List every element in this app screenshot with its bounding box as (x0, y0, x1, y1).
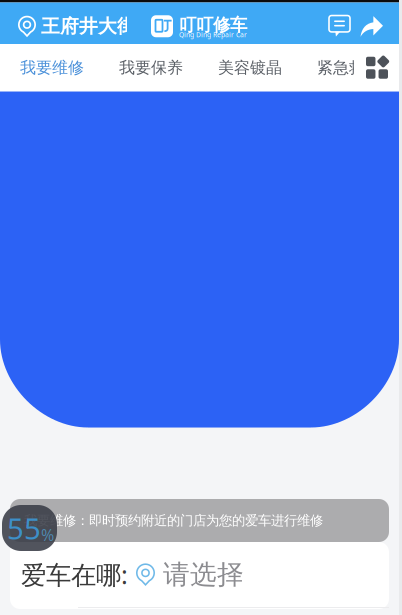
button[interactable]: 美容镀晶 (218, 44, 281, 91)
staticText: 爱车在哪: (21, 558, 128, 591)
button[interactable]: Share (360, 15, 383, 38)
button[interactable]: 爱车在哪: (10, 542, 389, 607)
button[interactable]: Messages (329, 15, 350, 37)
button[interactable]: 王府井大街 (0, 2, 147, 44)
button[interactable]: 我要维修 (20, 44, 83, 91)
staticText: 55 (7, 508, 41, 547)
staticText: 美容镀晶 (218, 58, 282, 78)
staticText: 请选择 (163, 558, 244, 591)
staticText: 我要保养 (119, 58, 183, 78)
staticText: 我要维修：即时预约附近的门店为您的爱车进行维修 (24, 512, 323, 529)
staticText: 我要维修 (20, 58, 84, 78)
button[interactable]: 紧急救援 (317, 44, 380, 91)
button[interactable]: 我要保养 (119, 44, 182, 91)
staticText: 王府井大街 (41, 15, 136, 38)
staticText: Qing Ding Repair Car (179, 30, 247, 39)
staticText: 紧急救援 (317, 58, 381, 78)
staticText: % (41, 524, 54, 545)
staticText: 叮叮修车 (179, 14, 247, 35)
button[interactable]: All categories (366, 57, 388, 79)
